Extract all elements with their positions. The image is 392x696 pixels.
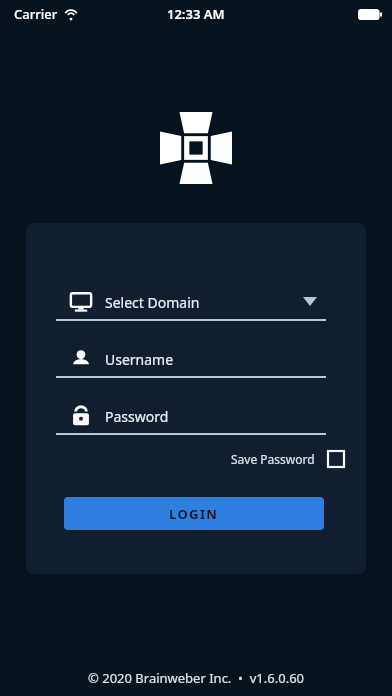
staticText: 12:33 AM (167, 5, 225, 23)
button[interactable]: Password (26, 399, 366, 435)
button[interactable]: Username (26, 342, 366, 378)
staticText: Select Domain (105, 293, 200, 312)
staticText: Carrier (14, 5, 58, 23)
other: Open domain list (303, 297, 317, 306)
button[interactable]: LOGIN (64, 497, 324, 530)
button[interactable]: Select Domain (26, 285, 366, 321)
staticText: Password (105, 407, 169, 426)
staticText: LOGIN (169, 505, 219, 523)
staticText: © 2020 Brainweber Inc. • v1.6.0.60 (88, 669, 304, 687)
staticText: Username (105, 350, 174, 369)
button[interactable]: Save Password (231, 445, 345, 473)
staticText: Save Password (231, 451, 315, 467)
